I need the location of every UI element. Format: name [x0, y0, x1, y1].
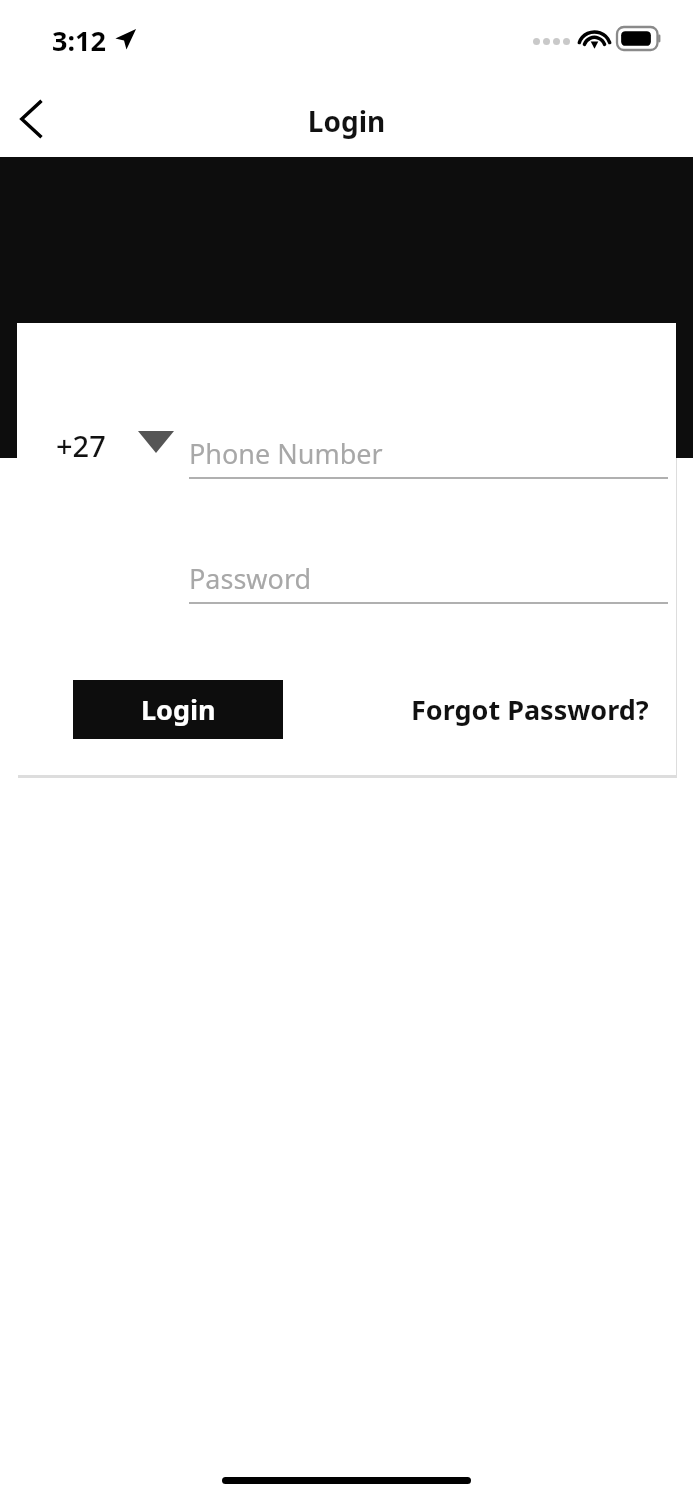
button[interactable]: Back [0, 80, 62, 157]
button[interactable]: Login [73, 680, 283, 739]
staticText: Login [0, 102, 693, 140]
staticText: Login [141, 691, 216, 728]
staticText: Phone Number [189, 435, 383, 472]
staticText: Forgot Password? [411, 691, 649, 728]
staticText: Password [189, 560, 312, 597]
staticText: 3:12 [52, 22, 106, 59]
button[interactable]: Password [172, 544, 668, 606]
staticText: +27 [56, 426, 106, 465]
button[interactable]: Phone Number [172, 419, 668, 481]
button[interactable]: Select country code [117, 415, 195, 469]
button[interactable]: Forgot Password? [407, 680, 652, 739]
